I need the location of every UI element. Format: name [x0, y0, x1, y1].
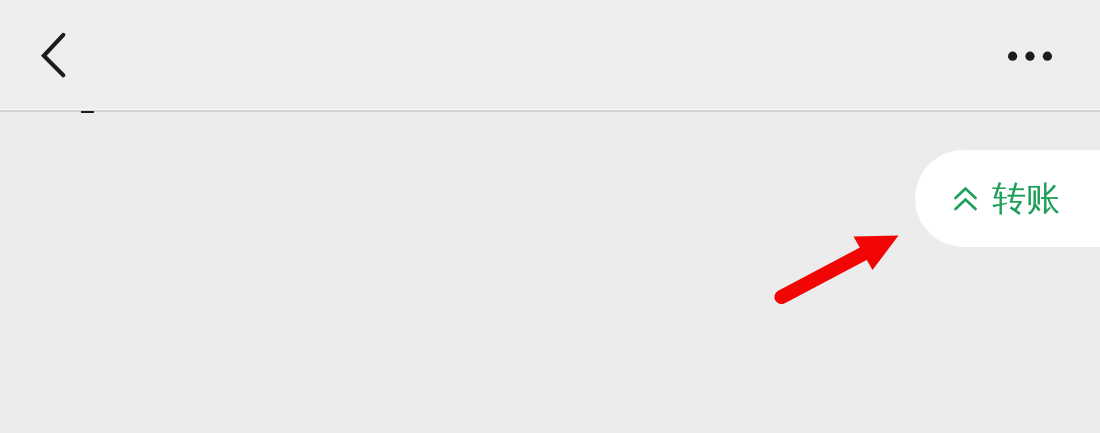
button[interactable]: 转账	[915, 150, 1100, 247]
staticText: 转账	[992, 177, 1060, 220]
button[interactable]: More options	[990, 28, 1070, 84]
button[interactable]: Back	[20, 22, 86, 88]
